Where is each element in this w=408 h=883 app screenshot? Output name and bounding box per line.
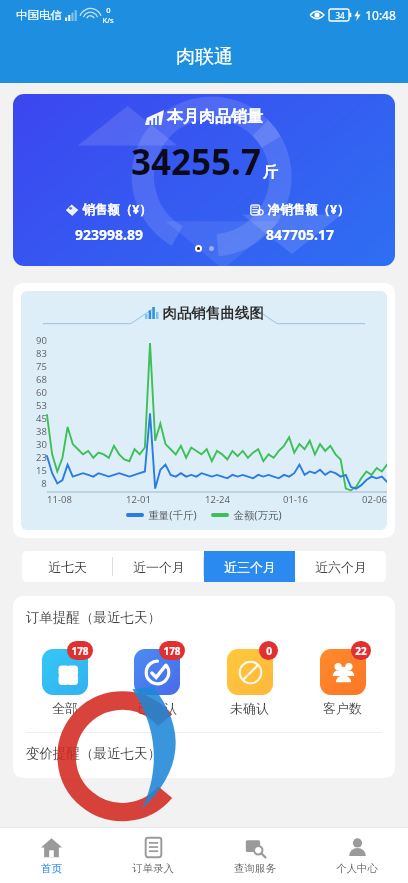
staticText: 75 (36, 360, 47, 373)
staticText: 68 (36, 373, 47, 386)
button[interactable]: 178 (19, 639, 111, 718)
staticText: 22 (355, 644, 367, 658)
staticText: 近七天 (48, 559, 87, 575)
staticText: 订单录入 (132, 862, 174, 875)
staticText: 近一个月 (133, 559, 185, 575)
button[interactable]: 0 (203, 639, 296, 718)
button[interactable]: 查询服务 (204, 827, 306, 883)
button[interactable]: 个人中心 (306, 827, 408, 883)
button[interactable]: 178 (111, 639, 203, 718)
button[interactable]: 22 (296, 639, 389, 718)
staticText: 订单提醒（最近七天） (26, 609, 161, 626)
staticText: 38 (36, 425, 47, 438)
staticText: 10:48 (365, 7, 396, 23)
staticText: 847705.17 (266, 225, 334, 244)
staticText: 客户数 (323, 700, 362, 716)
staticText: 变价提醒（最近七天） (26, 745, 161, 762)
staticText: 8 (41, 477, 47, 488)
staticText: 已确认 (138, 700, 177, 716)
staticText: 178 (71, 644, 89, 658)
staticText: 923998.89 (75, 225, 143, 244)
staticText: 90 (36, 334, 47, 347)
staticText: 23 (36, 451, 47, 464)
staticText: 12-01 (126, 493, 151, 506)
staticText: 近三个月 (224, 559, 276, 575)
button[interactable]: 近六个月 (295, 551, 386, 582)
staticText: 中国电信 (16, 8, 62, 22)
staticText: 近六个月 (315, 559, 367, 575)
staticText: 全部 (52, 700, 78, 716)
staticText: 45 (36, 412, 47, 425)
staticText: 34255.7 (131, 138, 261, 186)
staticText: 斤 (263, 163, 278, 182)
staticText: 0 (106, 5, 111, 15)
staticText: 30 (36, 438, 47, 451)
staticText: 01-16 (283, 493, 308, 506)
staticText: 178 (163, 644, 181, 658)
button[interactable]: 本月肉品销量 (13, 94, 395, 266)
staticText: 销售额（¥） (82, 201, 152, 218)
staticText: 本月肉品销量 (167, 107, 263, 127)
staticText: 肉联通 (176, 45, 233, 69)
staticText: 53 (36, 399, 47, 412)
staticText: 0 (266, 644, 272, 658)
staticText: 首页 (41, 862, 62, 875)
staticText: 肉品销售曲线图 (162, 304, 264, 322)
staticText: 83 (36, 347, 47, 360)
staticText: 12-24 (205, 493, 230, 506)
staticText: 11-08 (47, 493, 72, 506)
button[interactable]: 首页 (0, 827, 102, 883)
staticText: 未确认 (230, 700, 269, 716)
staticText: 02-06 (362, 493, 387, 506)
staticText: 查询服务 (234, 862, 276, 875)
staticText: 60 (36, 386, 47, 399)
staticText: 个人中心 (336, 862, 378, 875)
staticText: K/s (102, 15, 114, 25)
staticText: 重量(千斤) (148, 508, 197, 522)
button[interactable]: 订单录入 (102, 827, 204, 883)
staticText: 34 (335, 10, 345, 21)
button[interactable]: 近一个月 (113, 551, 204, 582)
staticText: 净销售额（¥） (267, 201, 350, 218)
button[interactable]: 近三个月 (204, 551, 295, 582)
staticText: 金额(万元) (233, 508, 282, 522)
button[interactable]: 近七天 (22, 551, 113, 582)
staticText: 15 (36, 464, 47, 477)
